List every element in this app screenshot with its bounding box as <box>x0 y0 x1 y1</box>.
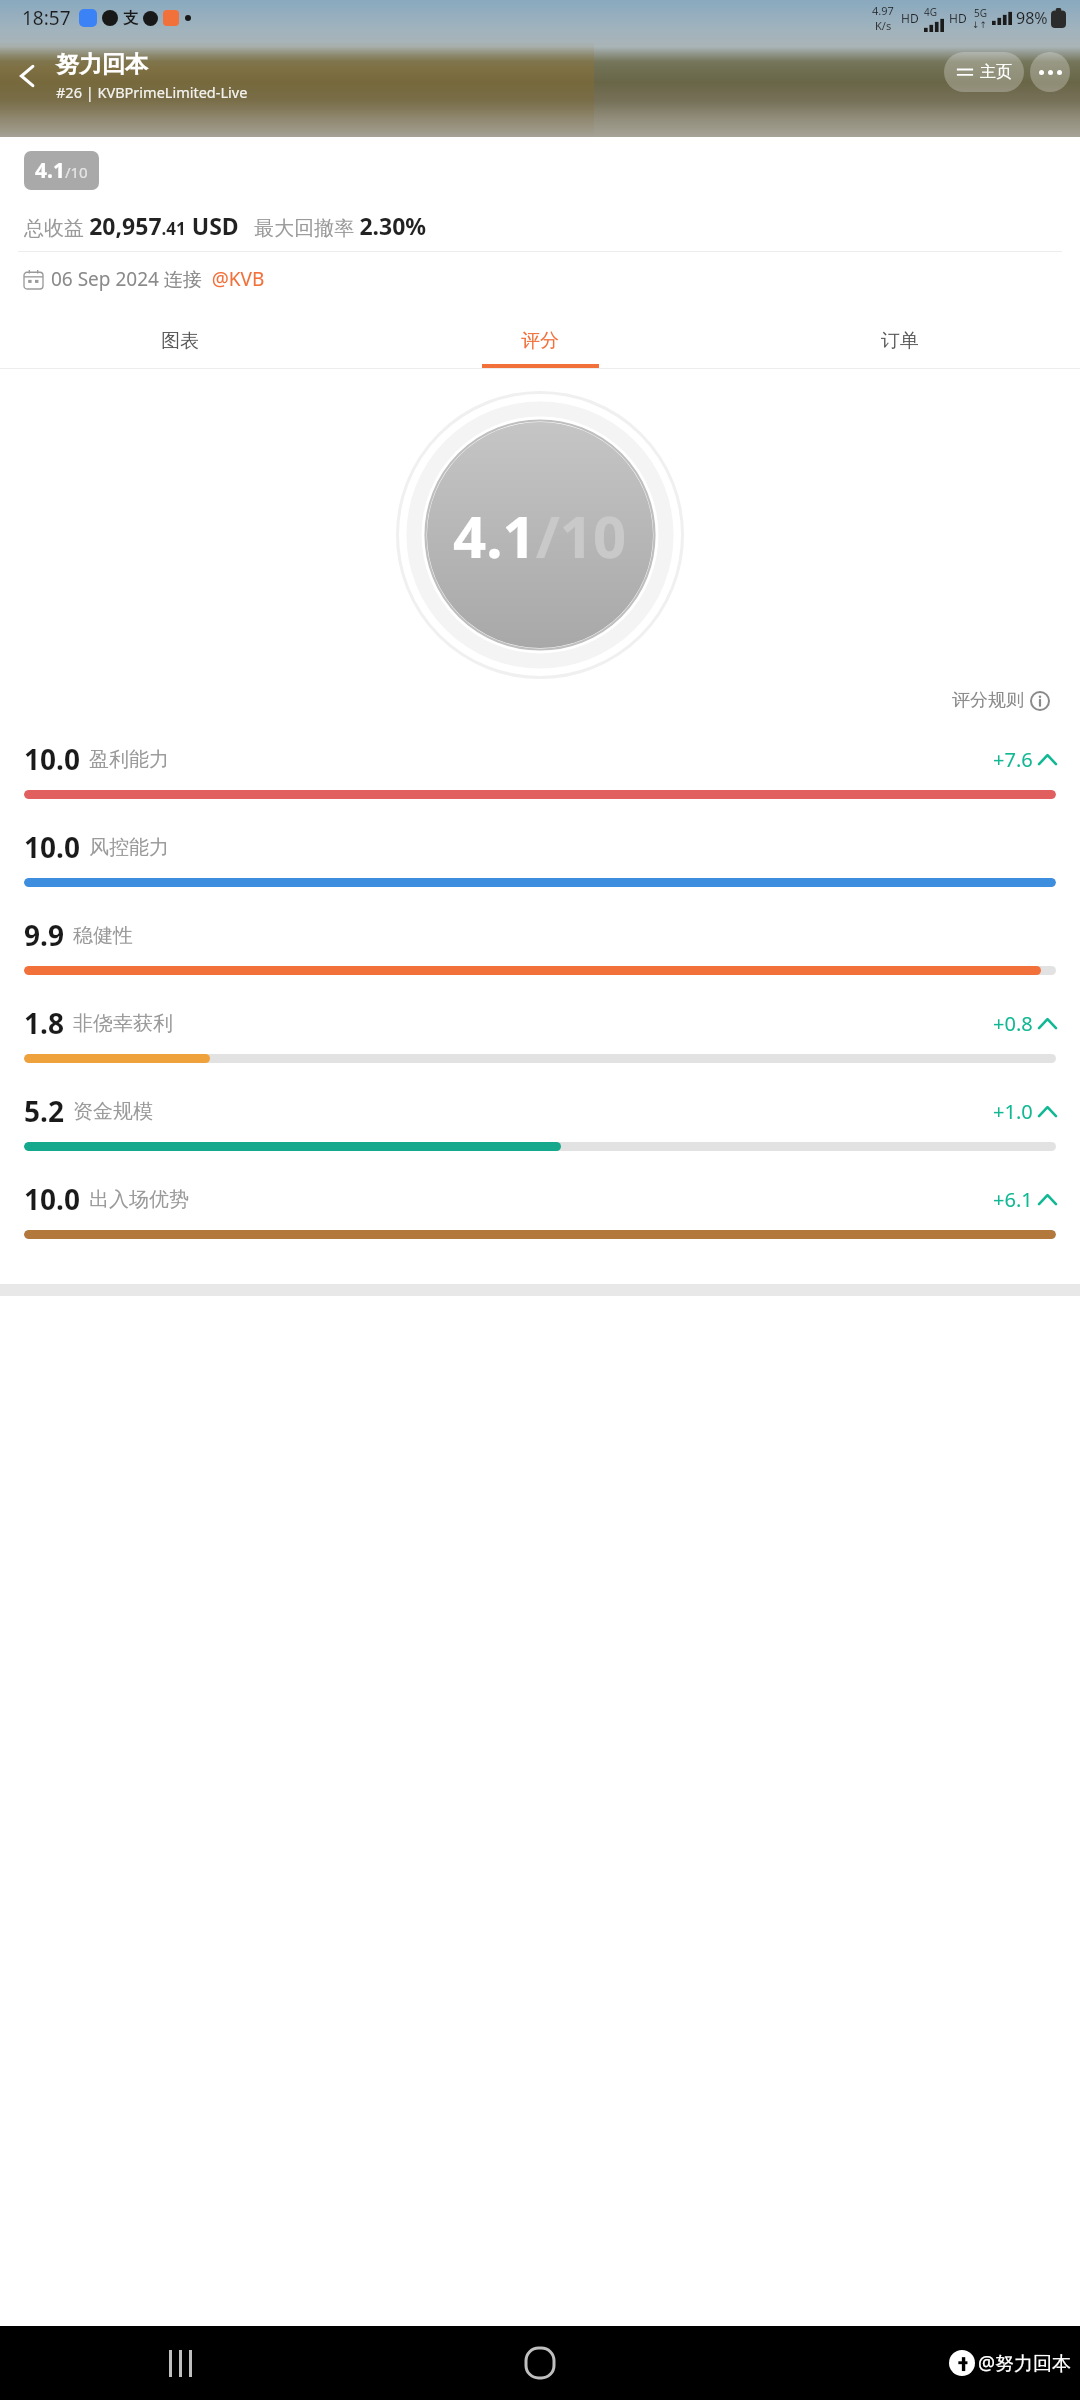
button[interactable]: 06 Sep 2024 连接 @KVB <box>0 264 1080 296</box>
button[interactable]: 5.2 <box>0 1092 1080 1180</box>
staticText: 出入场优势 <box>89 1187 189 1212</box>
staticText: HD <box>901 10 919 26</box>
staticText: 盈利能力 <box>89 747 169 772</box>
staticText: HD <box>949 10 967 26</box>
button[interactable]: 评分规则 <box>946 683 1056 718</box>
staticText: 9.9 <box>24 916 64 954</box>
staticText: 资金规模 <box>73 1099 153 1124</box>
staticText: 5G <box>974 6 987 20</box>
button[interactable]: 评分 <box>360 314 720 368</box>
button[interactable]: 图表 <box>0 314 360 368</box>
staticText: +6.1 <box>993 1186 1033 1213</box>
staticText: 4.1/10 <box>35 156 88 185</box>
button[interactable]: 订单 <box>720 314 1080 368</box>
staticText: 4G <box>924 5 937 19</box>
staticText: 总收益 20,957.41 USD 最大回撤率 2.30% <box>24 210 427 241</box>
button[interactable]: 10.0 <box>0 740 1080 828</box>
button[interactable]: 10.0 <box>0 1180 1080 1268</box>
staticText: 06 Sep 2024 连接 @KVB <box>51 266 265 292</box>
staticText: #26 | KVBPrimeLimited-Live <box>56 82 248 102</box>
staticText: +0.8 <box>993 1010 1033 1037</box>
button[interactable]: 主页 <box>944 52 1024 92</box>
button[interactable]: Recent apps <box>0 2326 360 2400</box>
staticText: 4.1/10 <box>453 496 627 575</box>
staticText: 稳健性 <box>73 923 133 948</box>
staticText: 5.2 <box>24 1092 64 1130</box>
staticText: +7.6 <box>993 746 1033 773</box>
staticText: 风控能力 <box>89 835 169 860</box>
staticText: 98% <box>1016 7 1048 29</box>
staticText: 努力回本 <box>56 50 148 79</box>
button[interactable]: Back <box>720 2326 1080 2400</box>
staticText: K/s <box>875 18 892 33</box>
staticText: 10.0 <box>24 1180 80 1218</box>
button[interactable]: 1.8 <box>0 1004 1080 1092</box>
staticText: 订单 <box>881 329 919 353</box>
staticText: +1.0 <box>993 1098 1033 1125</box>
button[interactable]: 10.0 <box>0 828 1080 916</box>
button[interactable]: Home <box>360 2326 720 2400</box>
staticText: 1.8 <box>24 1004 64 1042</box>
staticText: 评分规则 <box>952 689 1024 712</box>
button[interactable]: 4.1/10 <box>24 151 99 190</box>
staticText: 18:57 <box>22 5 71 31</box>
staticText: 评分 <box>521 329 559 353</box>
staticText: 支 <box>123 9 138 28</box>
button[interactable]: 9.9 <box>0 916 1080 1004</box>
staticText: 4.97 <box>872 3 894 18</box>
staticText: ↓↑ <box>972 20 988 30</box>
button[interactable]: More options <box>1030 52 1070 92</box>
staticText: 非侥幸获利 <box>73 1011 173 1036</box>
staticText: 图表 <box>161 329 199 353</box>
staticText: @努力回本 <box>978 2350 1072 2376</box>
staticText: 10.0 <box>24 740 80 778</box>
staticText: 主页 <box>980 62 1012 82</box>
button[interactable]: Back <box>0 48 56 104</box>
staticText: 10.0 <box>24 828 80 866</box>
